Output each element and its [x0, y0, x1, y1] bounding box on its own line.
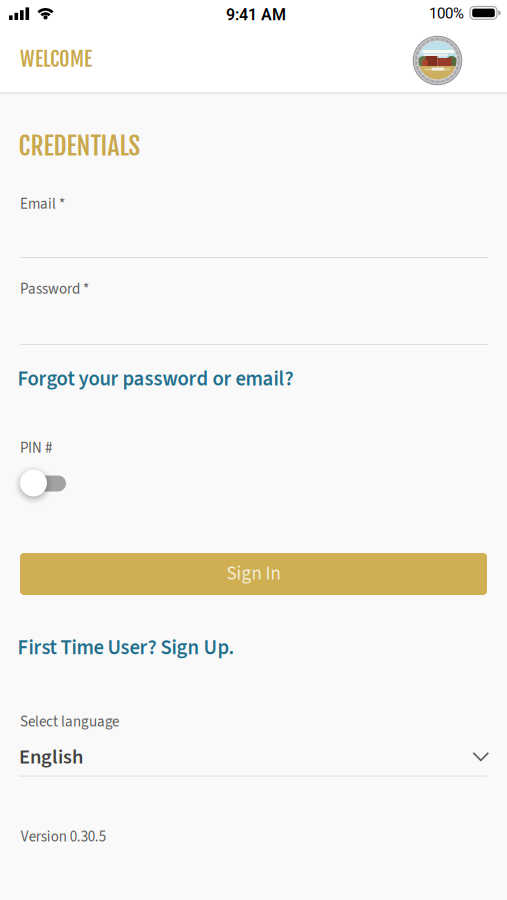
- staticText: Password *: [20, 278, 89, 300]
- staticText: Email *: [20, 193, 65, 215]
- staticText: Version 0.30.5: [21, 826, 106, 847]
- staticText: PIN #: [20, 437, 52, 459]
- button[interactable]: Password: [20, 301, 488, 345]
- staticText: WELCOME: [20, 46, 92, 72]
- staticText: First Time User? Sign Up.: [17, 633, 234, 663]
- button[interactable]: First Time User? Sign Up.: [17, 633, 234, 663]
- staticText: 100%: [429, 5, 464, 22]
- staticText: 9:41 AM: [226, 5, 286, 24]
- staticText: Select language: [20, 711, 119, 733]
- staticText: Sign In: [226, 560, 280, 587]
- button[interactable]: Email: [20, 214, 488, 258]
- button[interactable]: Sign In: [20, 553, 487, 595]
- button[interactable]: Forgot your password or email?: [17, 364, 293, 394]
- staticText: English: [19, 743, 83, 772]
- button[interactable]: PIN #: [20, 469, 66, 497]
- staticText: Forgot your password or email?: [17, 364, 293, 394]
- staticText: CREDENTIALS: [19, 130, 141, 162]
- button[interactable]: English: [19, 740, 487, 774]
